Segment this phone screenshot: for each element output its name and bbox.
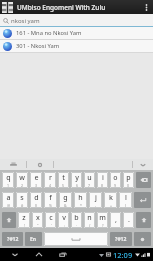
staticText: v (62, 213, 66, 223)
button[interactable]: . (123, 212, 134, 228)
button[interactable]: En (25, 232, 42, 246)
button[interactable]: More options (141, 0, 151, 14)
button[interactable]: s (16, 192, 28, 208)
button[interactable]: App icon (2, 2, 13, 13)
staticText: ! (24, 223, 25, 228)
button[interactable]: b (71, 212, 82, 228)
staticText: % (49, 203, 52, 208)
button[interactable]: Enter (134, 192, 151, 208)
staticText: b (74, 213, 79, 223)
button[interactable]: Home (32, 249, 45, 260)
button[interactable]: d (30, 192, 42, 208)
staticText: z (22, 213, 26, 223)
staticText: j (95, 193, 97, 203)
staticText: & (64, 203, 67, 208)
button[interactable]: c (45, 212, 56, 228)
staticText: o (113, 173, 118, 183)
staticText: u (87, 173, 92, 183)
staticText: i (102, 173, 104, 183)
button[interactable]: Clipboard (0, 159, 26, 170)
button[interactable]: 161 - Mna no Nkosi Yam (0, 27, 153, 39)
staticText: En (30, 236, 37, 243)
button[interactable]: Voice input (27, 159, 53, 170)
staticText: - (95, 203, 97, 208)
staticText: + (110, 203, 113, 208)
staticText: l (125, 193, 127, 203)
button[interactable]: n (84, 212, 95, 228)
button[interactable]: Keyboard settings (134, 232, 151, 246)
staticText: @ (7, 203, 11, 208)
staticText: # (21, 203, 24, 208)
staticText: k (109, 193, 113, 203)
button[interactable]: z (18, 212, 30, 228)
button[interactable]: l (119, 192, 132, 208)
staticText: : (64, 223, 65, 228)
button[interactable]: f (44, 192, 57, 208)
button[interactable]: u (84, 172, 95, 188)
staticText: ? (102, 223, 104, 228)
staticText: 6 (76, 183, 79, 188)
button[interactable]: Back (8, 249, 21, 260)
staticText: n (87, 213, 92, 223)
staticText: d (34, 193, 39, 203)
button[interactable]: v (58, 212, 69, 228)
button[interactable]: t (58, 172, 69, 188)
button[interactable]: g (59, 192, 72, 208)
staticText: x (36, 213, 40, 223)
staticText: ( (125, 203, 127, 208)
button[interactable]: q (2, 172, 14, 188)
staticText: " (37, 223, 39, 228)
staticText: ?#12 (7, 236, 19, 243)
button[interactable]: Backspace (136, 172, 151, 188)
staticText: 161 - Mna no Nkosi Yam (16, 29, 82, 37)
button[interactable]: y (71, 172, 82, 188)
staticText: h (78, 193, 83, 203)
button[interactable]: w (16, 172, 28, 188)
button[interactable]: 301 - Nkosi Yam (0, 40, 153, 52)
button[interactable]: nkosi yam (0, 14, 153, 27)
button[interactable]: k (104, 192, 117, 208)
staticText: $ (35, 203, 38, 208)
staticText: 5 (62, 183, 65, 188)
staticText: a (6, 193, 11, 203)
staticText: r (49, 173, 52, 183)
staticText: 0 (127, 183, 130, 188)
button[interactable]: ?#12 (2, 232, 23, 246)
staticText: / (89, 223, 91, 228)
staticText: 4 (49, 183, 52, 188)
staticText: t (62, 173, 65, 183)
staticText: * (80, 203, 82, 208)
button[interactable]: h (74, 192, 87, 208)
button[interactable]: e (30, 172, 42, 188)
staticText: c (49, 213, 53, 223)
button[interactable]: Recent apps (56, 249, 69, 260)
button[interactable]: a (2, 192, 14, 208)
staticText: 2 (21, 183, 24, 188)
button[interactable]: i (97, 172, 108, 188)
button[interactable]: j (89, 192, 102, 208)
staticText: y (75, 173, 79, 183)
button[interactable]: r (44, 172, 56, 188)
staticText: m (99, 213, 106, 223)
staticText: 9 (114, 183, 117, 188)
button[interactable]: m (97, 212, 108, 228)
button[interactable]: Space (44, 232, 108, 246)
staticText: ' (51, 223, 52, 228)
button[interactable]: Shift (2, 212, 16, 228)
staticText: 1 (7, 183, 10, 188)
staticText: 12:09 (113, 250, 133, 260)
staticText: UMbiso Engomeni With Zulu (17, 3, 106, 12)
button[interactable]: p (123, 172, 134, 188)
button[interactable]: o (110, 172, 121, 188)
staticText: q (6, 173, 11, 183)
button[interactable]: Hide suggestions (133, 159, 153, 170)
button[interactable]: Shift (136, 212, 151, 228)
staticText: . (128, 215, 130, 225)
staticText: w (19, 173, 25, 183)
staticText: f (49, 193, 52, 203)
staticText: , (115, 215, 117, 225)
button[interactable]: x (32, 212, 43, 228)
button[interactable]: ?#12 (110, 232, 132, 246)
button[interactable]: , (110, 212, 121, 228)
staticText: 8 (101, 183, 104, 188)
